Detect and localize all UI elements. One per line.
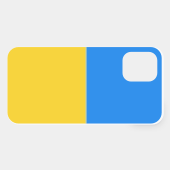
- button[interactable]: iPhone case, yellow and blue: [0, 0, 170, 170]
